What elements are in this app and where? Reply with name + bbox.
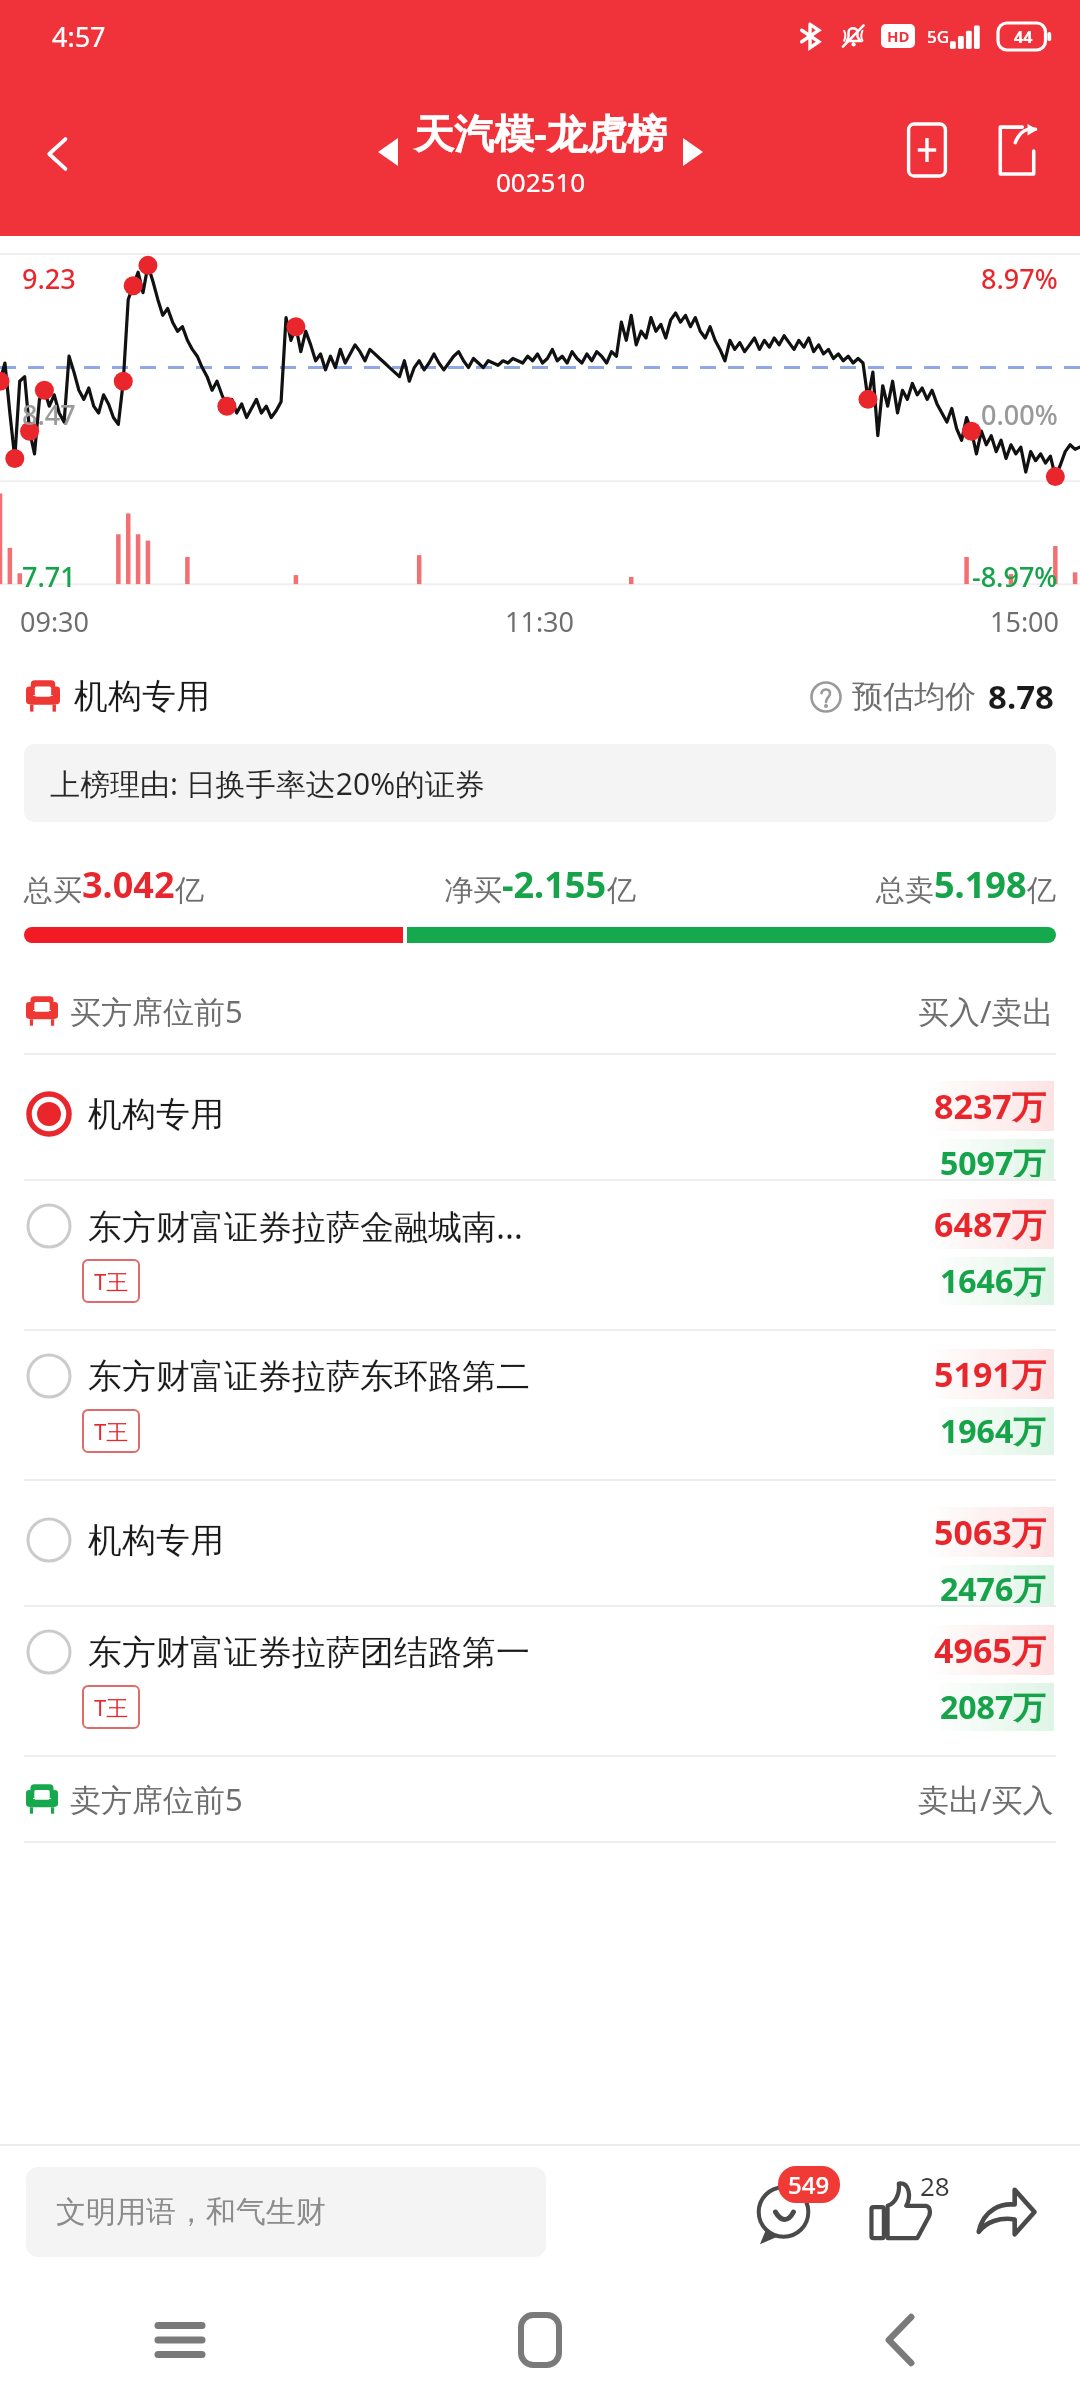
staticText: 4965万 <box>934 1627 1046 1673</box>
staticText: 0.00% <box>981 396 1058 433</box>
button[interactable]: 东方财富证券拉萨团结路第一 <box>0 1607 1080 1755</box>
staticText: 09:30 <box>20 603 90 640</box>
staticText: 机构专用 <box>88 1093 224 1136</box>
staticText: 6487万 <box>934 1201 1046 1247</box>
button[interactable]: 预估均价 <box>810 674 1054 719</box>
staticText: 卖出/买入 <box>918 1778 1054 1820</box>
staticText: 4:57 <box>52 18 106 55</box>
button[interactable]: 文明用语，和气生财 <box>26 2167 546 2257</box>
button[interactable]: Comments 549 <box>738 2164 834 2260</box>
button[interactable]: 东方财富证券拉萨东环路第二 <box>0 1331 1080 1479</box>
button[interactable]: Add to watchlist <box>886 109 968 191</box>
button[interactable]: 东方财富证券拉萨金融城南… <box>0 1181 1080 1329</box>
staticText: 买方席位前5 <box>70 990 243 1032</box>
button[interactable]: Share <box>958 2164 1054 2260</box>
staticText: 买入/卖出 <box>918 990 1054 1032</box>
staticText: 549 <box>788 2168 830 2201</box>
staticText: 8.78 <box>988 674 1054 719</box>
staticText: 5.198 <box>934 860 1027 909</box>
staticText: HD <box>887 26 910 46</box>
staticText: T王 <box>94 1692 129 1722</box>
staticText: 亿 <box>175 872 204 909</box>
staticText: 东方财富证券拉萨金融城南… <box>88 1203 523 1249</box>
staticText: -8.97% <box>972 558 1058 595</box>
staticText: 上榜理由: 日换手率达20%的证券 <box>50 763 486 804</box>
staticText: 机构专用 <box>74 675 210 718</box>
button[interactable]: Back <box>720 2280 1080 2400</box>
button[interactable]: 机构专用 <box>0 1055 1080 1179</box>
button[interactable]: Home <box>360 2280 720 2400</box>
staticText: 2087万 <box>940 1685 1046 1729</box>
button[interactable]: Back <box>18 114 98 194</box>
staticText: 44 <box>1014 26 1033 48</box>
staticText: 1646万 <box>940 1259 1046 1303</box>
staticText: 5191万 <box>934 1351 1046 1397</box>
button[interactable]: Like 28 <box>852 2164 948 2260</box>
button[interactable]: Previous stock <box>362 126 414 178</box>
staticText: T王 <box>94 1266 129 1296</box>
button[interactable]: Share <box>976 109 1058 191</box>
staticText: 5063万 <box>934 1509 1046 1555</box>
staticText: 预估均价 <box>852 677 976 716</box>
staticText: -2.155 <box>502 860 607 909</box>
staticText: 28 <box>920 2168 950 2203</box>
staticText: 8.47 <box>22 396 76 433</box>
staticText: T王 <box>94 1416 129 1446</box>
staticText: 5G <box>927 25 950 48</box>
staticText: 天汽模-龙虎榜 <box>414 105 667 160</box>
button[interactable]: 卖方席位前5 <box>26 1757 1054 1841</box>
button[interactable]: 机构专用 <box>0 1481 1080 1605</box>
button[interactable]: Recent apps <box>0 2280 360 2400</box>
button[interactable]: Next stock <box>667 126 719 178</box>
staticText: 东方财富证券拉萨东环路第二 <box>88 1355 530 1398</box>
staticText: 11:30 <box>505 603 575 640</box>
button[interactable]: 买方席位前5 <box>26 969 1054 1053</box>
staticText: 文明用语，和气生财 <box>56 2193 326 2231</box>
staticText: 总买 <box>24 872 82 909</box>
staticText: 机构专用 <box>88 1519 224 1562</box>
staticText: 卖方席位前5 <box>70 1778 243 1820</box>
staticText: 东方财富证券拉萨团结路第一 <box>88 1631 530 1674</box>
staticText: 8237万 <box>934 1083 1046 1129</box>
staticText: 9.23 <box>22 260 76 297</box>
staticText: 总卖 <box>876 872 934 909</box>
button[interactable]: 上榜理由: 日换手率达20%的证券 <box>24 744 1056 822</box>
staticText: 亿 <box>607 872 636 909</box>
staticText: 3.042 <box>82 860 175 909</box>
staticText: 2476万 <box>940 1567 1046 1603</box>
staticText: 1964万 <box>940 1409 1046 1453</box>
staticText: 5097万 <box>940 1141 1046 1177</box>
staticText: 亿 <box>1027 872 1056 909</box>
staticText: 002510 <box>496 164 586 199</box>
staticText: 净买 <box>444 872 502 909</box>
staticText: 7.71 <box>22 558 76 595</box>
staticText: 8.97% <box>981 260 1058 297</box>
staticText: 15:00 <box>990 603 1060 640</box>
